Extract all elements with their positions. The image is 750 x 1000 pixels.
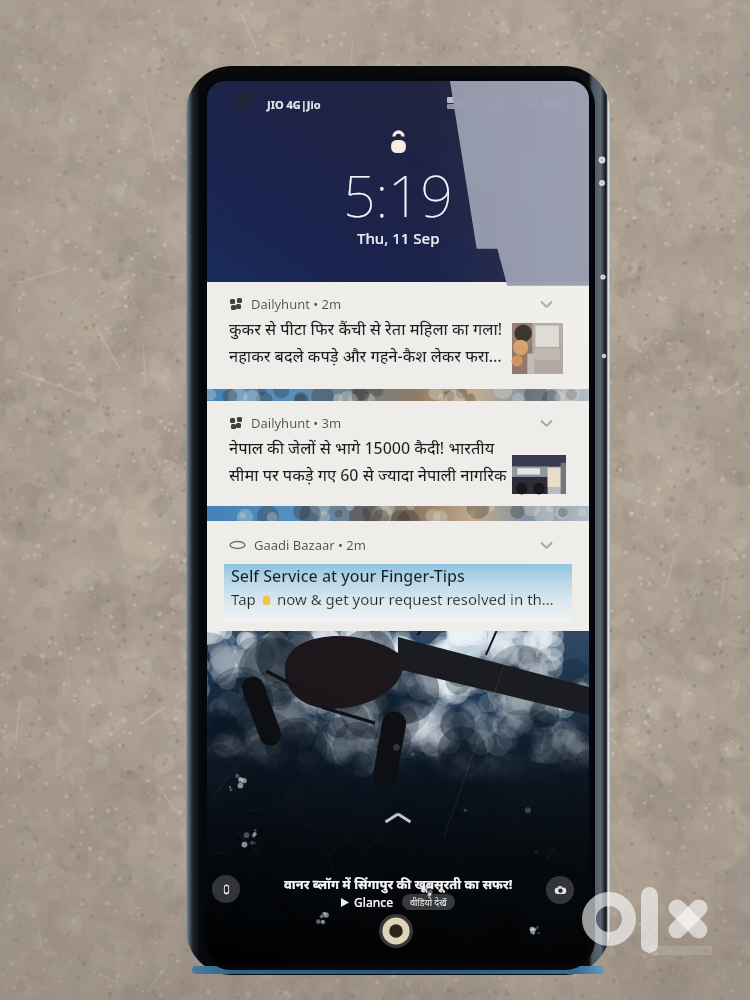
button[interactable]: Dailyhunt • 2m bbox=[207, 282, 589, 389]
button[interactable]: Gaadi Bazaar • 2m bbox=[207, 521, 589, 631]
staticText: Thu, 11 Sep bbox=[357, 228, 440, 248]
button[interactable]: वीडियो देखें bbox=[402, 894, 455, 910]
staticText: Self Service at your Finger-Tips bbox=[231, 565, 465, 587]
staticText: 5:19 bbox=[343, 156, 454, 234]
staticText: Gaadi Bazaar • 2m bbox=[254, 536, 366, 554]
staticText: वीडियो देखें bbox=[410, 896, 447, 908]
staticText: वानर ब्लॉग में सिंगापुर की खूबसूरती का स… bbox=[284, 875, 513, 893]
staticText: Glance bbox=[354, 894, 394, 910]
staticText: Dailyhunt • 3m bbox=[251, 414, 342, 432]
staticText: Dailyhunt • 2m bbox=[251, 295, 342, 313]
staticText: now & get your request resolved in th… bbox=[273, 589, 554, 609]
button[interactable]: Expand notification bbox=[540, 300, 553, 308]
staticText: नेपाल की जेलों से भागे 15000 कैदी! भारती… bbox=[229, 437, 495, 459]
button[interactable]: Camera bbox=[546, 876, 574, 904]
staticText: JIO 4G|Jio bbox=[267, 97, 321, 112]
button[interactable]: Dailyhunt • 3m bbox=[207, 401, 589, 506]
staticText: Tap bbox=[231, 589, 260, 609]
other: OLX watermark bbox=[0, 0, 750, 1000]
button[interactable]: Phone bbox=[212, 875, 240, 903]
staticText: सीमा पर पकड़े गए 60 से ज्यादा नेपाली नाग… bbox=[229, 464, 507, 486]
staticText: नहाकर बदले कपड़े और गहने-कैश लेकर फरा… bbox=[229, 345, 502, 367]
button[interactable]: Expand notification bbox=[540, 541, 553, 549]
button[interactable]: Expand notification bbox=[540, 419, 553, 427]
staticText: कुकर से पीटा फिर कैंची से रेता महिला का … bbox=[229, 318, 503, 340]
